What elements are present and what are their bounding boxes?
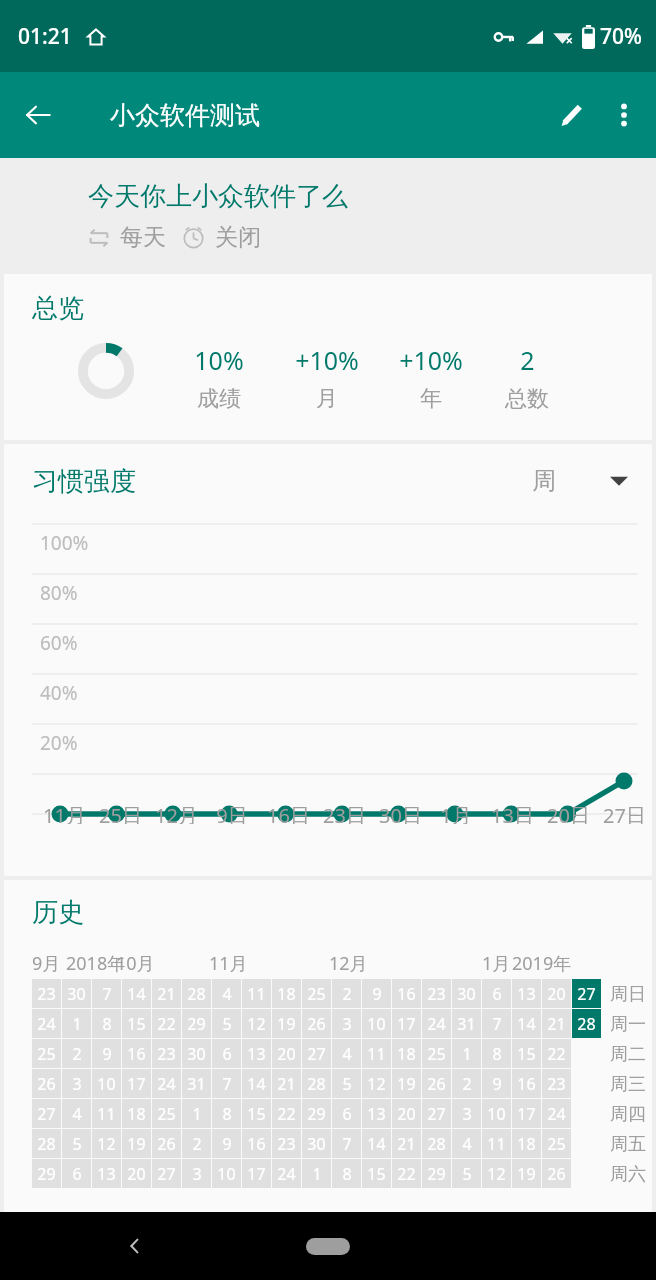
button[interactable]: 5: [332, 1069, 361, 1098]
button[interactable]: 26: [542, 1159, 571, 1188]
button[interactable]: 10: [92, 1069, 121, 1098]
button[interactable]: 10: [482, 1099, 511, 1128]
button[interactable]: Edit: [546, 89, 598, 141]
button[interactable]: 3: [182, 1159, 211, 1188]
button[interactable]: 12: [482, 1159, 511, 1188]
button[interactable]: 7: [212, 1069, 241, 1098]
button[interactable]: 3: [452, 1099, 481, 1128]
button[interactable]: 16: [512, 1069, 541, 1098]
button[interactable]: 18: [512, 1129, 541, 1158]
button[interactable]: 16: [242, 1129, 271, 1158]
button[interactable]: 10: [212, 1159, 241, 1188]
button[interactable]: 26: [302, 1009, 331, 1038]
button[interactable]: 1: [302, 1159, 331, 1188]
button[interactable]: 19: [272, 1009, 301, 1038]
button[interactable]: 23: [422, 979, 451, 1008]
button[interactable]: 2: [332, 979, 361, 1008]
button[interactable]: 16: [392, 979, 421, 1008]
button[interactable]: 22: [152, 1009, 181, 1038]
button[interactable]: 7: [482, 1009, 511, 1038]
button[interactable]: 31: [182, 1069, 211, 1098]
button[interactable]: 6: [482, 979, 511, 1008]
button[interactable]: 29: [302, 1099, 331, 1128]
button[interactable]: 9: [362, 979, 391, 1008]
button[interactable]: 24: [542, 1099, 571, 1128]
button[interactable]: 15: [122, 1009, 151, 1038]
button[interactable]: 28: [182, 979, 211, 1008]
button[interactable]: 15: [362, 1159, 391, 1188]
button[interactable]: 7: [332, 1129, 361, 1158]
button[interactable]: 12: [362, 1069, 391, 1098]
button[interactable]: 9: [212, 1129, 241, 1158]
button[interactable]: 7: [92, 979, 121, 1008]
button[interactable]: 14: [242, 1069, 271, 1098]
button[interactable]: 25: [32, 1039, 61, 1068]
button[interactable]: 28: [302, 1069, 331, 1098]
button[interactable]: 2: [62, 1039, 91, 1068]
button[interactable]: 23: [272, 1129, 301, 1158]
button[interactable]: 13: [512, 979, 541, 1008]
button[interactable]: 8: [212, 1099, 241, 1128]
button[interactable]: 29: [422, 1159, 451, 1188]
button[interactable]: 28: [422, 1129, 451, 1158]
button[interactable]: 26: [422, 1069, 451, 1098]
button[interactable]: 12: [242, 1009, 271, 1038]
button[interactable]: 20: [542, 979, 571, 1008]
button[interactable]: 27: [152, 1159, 181, 1188]
button[interactable]: 5: [62, 1129, 91, 1158]
button[interactable]: 31: [452, 1009, 481, 1038]
button[interactable]: 14: [512, 1009, 541, 1038]
button[interactable]: 18: [122, 1099, 151, 1128]
button[interactable]: 1: [62, 1009, 91, 1038]
button[interactable]: 15: [242, 1099, 271, 1128]
button[interactable]: 11: [362, 1039, 391, 1068]
button[interactable]: 20: [392, 1099, 421, 1128]
button[interactable]: 17: [122, 1069, 151, 1098]
button[interactable]: 17: [392, 1009, 421, 1038]
button[interactable]: 25: [542, 1129, 571, 1158]
button[interactable]: 27: [302, 1039, 331, 1068]
button[interactable]: 12: [92, 1129, 121, 1158]
button[interactable]: Back: [14, 91, 62, 139]
button[interactable]: 17: [242, 1159, 271, 1188]
button[interactable]: 4: [452, 1129, 481, 1158]
button[interactable]: 8: [92, 1009, 121, 1038]
button[interactable]: 1: [182, 1099, 211, 1128]
button[interactable]: 8: [482, 1039, 511, 1068]
button[interactable]: 27: [572, 979, 601, 1008]
button[interactable]: 23: [32, 979, 61, 1008]
button[interactable]: 13: [92, 1159, 121, 1188]
button[interactable]: 26: [152, 1129, 181, 1158]
button[interactable]: 10: [362, 1009, 391, 1038]
button[interactable]: 30: [452, 979, 481, 1008]
button[interactable]: 19: [512, 1159, 541, 1188]
button[interactable]: 25: [302, 979, 331, 1008]
button[interactable]: 11: [242, 979, 271, 1008]
button[interactable]: 30: [182, 1039, 211, 1068]
button[interactable]: 5: [212, 1009, 241, 1038]
button[interactable]: 9: [482, 1069, 511, 1098]
button[interactable]: 30: [302, 1129, 331, 1158]
button[interactable]: 19: [122, 1129, 151, 1158]
button[interactable]: 27: [32, 1099, 61, 1128]
button[interactable]: 14: [122, 979, 151, 1008]
button[interactable]: 14: [362, 1129, 391, 1158]
button[interactable]: 4: [332, 1039, 361, 1068]
button[interactable]: 21: [392, 1129, 421, 1158]
button[interactable]: 2: [182, 1129, 211, 1158]
button[interactable]: 4: [212, 979, 241, 1008]
button[interactable]: 6: [62, 1159, 91, 1188]
button[interactable]: 23: [542, 1069, 571, 1098]
button[interactable]: 28: [32, 1129, 61, 1158]
button[interactable]: 17: [512, 1099, 541, 1128]
button[interactable]: 23: [152, 1039, 181, 1068]
button[interactable]: 21: [152, 979, 181, 1008]
button[interactable]: 24: [32, 1009, 61, 1038]
button[interactable]: 25: [422, 1039, 451, 1068]
button[interactable]: 8: [332, 1159, 361, 1188]
button[interactable]: 22: [272, 1099, 301, 1128]
button[interactable]: 20: [122, 1159, 151, 1188]
